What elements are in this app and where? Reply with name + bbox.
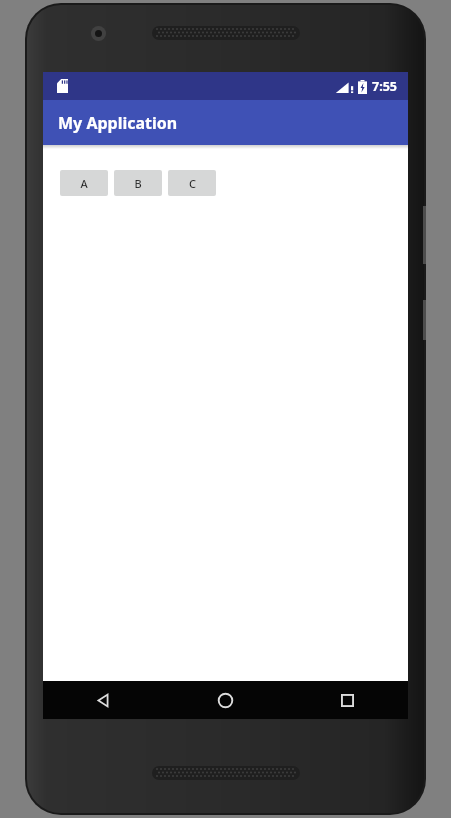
button[interactable]: B bbox=[114, 170, 162, 196]
staticText: 7:55 bbox=[372, 78, 397, 95]
button[interactable]: C bbox=[168, 170, 216, 196]
staticText: C bbox=[189, 176, 196, 191]
staticText: My Application bbox=[58, 112, 178, 134]
button[interactable]: Back bbox=[43, 681, 164, 719]
staticText: A bbox=[80, 176, 88, 191]
staticText: B bbox=[134, 176, 142, 191]
button[interactable]: Recent apps bbox=[286, 681, 408, 719]
button[interactable]: A bbox=[60, 170, 108, 196]
button[interactable]: Home bbox=[164, 681, 286, 719]
